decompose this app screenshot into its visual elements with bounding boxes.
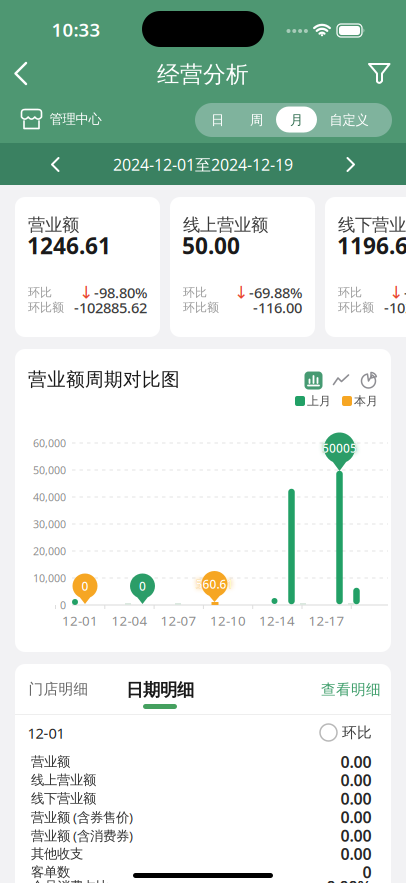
staticText: 线下营业额 [338,214,406,236]
staticText: 0.00% [326,876,371,883]
button[interactable] [329,368,353,392]
button[interactable]: 管理中心 [20,107,101,131]
staticText: 20,000 [33,544,66,558]
staticText: 周 [250,112,263,128]
staticText: 经营分析 [157,61,249,88]
staticText: 0 [362,861,371,883]
staticText: 日 [211,112,224,128]
staticText: 门店明细 [28,680,88,698]
staticText: 营业额 [28,214,79,236]
staticText: 12-01 [27,723,64,743]
button[interactable] [331,150,371,179]
button[interactable]: 日期明细 [105,675,215,705]
staticText: 线上营业额 [31,772,96,788]
staticText: 日期明细 [126,679,194,701]
staticText: 管理中心 [49,111,101,127]
staticText: 环比 [183,285,207,300]
staticText: 560.61 [195,576,233,592]
staticText: 0.00 [340,825,371,846]
staticText: 环比 [28,285,52,300]
button[interactable]: 线上营业额 [170,197,315,337]
staticText: 自定义 [329,112,368,128]
staticText: -102885.62 [74,298,147,317]
staticText: 50.00 [182,230,240,260]
staticText: 50005 [322,440,357,456]
button[interactable] [0,54,44,94]
staticText: 60,000 [33,436,66,450]
button[interactable] [195,103,392,137]
button[interactable]: 2024-12-01至2024-12-19 [113,154,293,175]
staticText: 0.00 [340,751,371,772]
button[interactable]: 线下营业额 [325,197,406,337]
staticText: 上月 [307,394,331,408]
button[interactable] [357,368,381,392]
staticText: -69.88% [249,283,302,302]
staticText: 月 [290,112,303,128]
staticText: 营业额 (含券售价) [31,808,133,826]
staticText: 10:33 [51,17,100,42]
staticText: 0.00 [340,788,371,809]
staticText: 营业额 (含消费券) [31,827,133,844]
staticText: 12-07 [160,612,196,629]
staticText: 0 [139,578,146,594]
staticText: 线上营业额 [183,214,268,236]
staticText: 1196.61 [337,230,406,260]
staticText: 12-01 [62,612,98,629]
staticText: ↓ [234,283,249,302]
staticText: 30,000 [33,517,66,531]
staticText: -98.85% [404,283,406,302]
button[interactable]: 日 [197,103,237,137]
staticText: 50005 [322,440,357,456]
staticText: 其他收支 [31,846,83,862]
staticText: ↓ [389,283,404,302]
staticText: 环比额 [183,300,219,315]
staticText: 560.61 [195,576,233,592]
button[interactable] [35,150,75,179]
staticText: 12-14 [259,612,295,629]
staticText: 12-04 [111,612,147,629]
button[interactable]: 环比 [320,723,372,741]
staticText: 10,000 [33,571,66,585]
button[interactable]: 月 [276,103,317,137]
staticText: 0.00 [340,806,371,828]
button[interactable]: 营业额 [15,197,160,337]
staticText: 环比 [338,285,362,300]
button[interactable] [359,53,399,93]
staticText: -98.80% [94,283,147,302]
staticText: 0.00 [340,769,371,791]
staticText: 12-17 [308,612,344,629]
staticText: 环比额 [338,300,374,315]
button[interactable] [301,368,325,392]
staticText: 会员消费占比 [31,878,109,883]
staticText: 40,000 [33,490,66,504]
staticText: 0 [81,578,88,594]
staticText: 2024-12-01至2024-12-19 [113,154,293,175]
staticText: 环比 [342,723,372,741]
staticText: 50,000 [33,463,66,477]
staticText: -102769.62 [384,298,406,317]
button[interactable]: 自定义 [318,103,380,137]
button[interactable]: 门店明细 [18,674,98,704]
button[interactable]: 周 [236,103,276,137]
staticText: 营业额 [31,754,70,770]
staticText: 客单数 [31,864,70,880]
staticText: 线下营业额 [31,790,96,807]
staticText: 12-10 [210,612,246,629]
staticText: ↓ [79,283,94,302]
staticText: 本月 [354,394,378,408]
staticText: 营业额周期对比图 [28,368,180,391]
staticText: 环比额 [28,300,64,315]
button[interactable]: 查看明细 [316,674,386,704]
staticText: 查看明细 [321,680,381,698]
staticText: 0.00 [340,843,371,864]
staticText: -116.00 [253,298,302,317]
staticText: 1246.61 [27,230,111,260]
staticText: 0 [60,598,66,612]
